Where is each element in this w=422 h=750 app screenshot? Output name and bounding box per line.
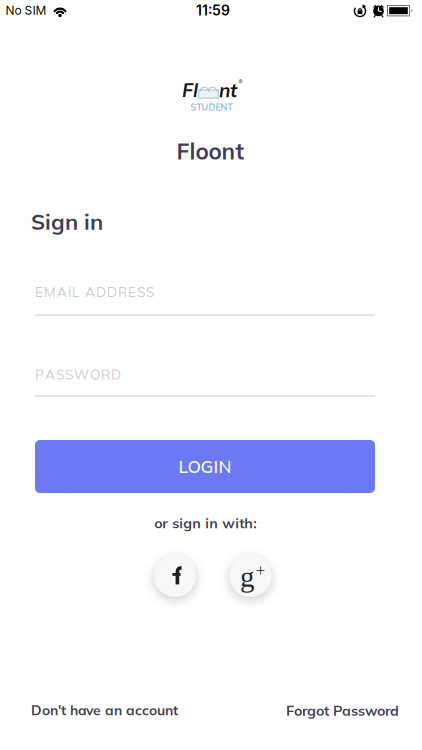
staticText: g: [240, 561, 255, 593]
button[interactable]: Forgot Password: [286, 702, 399, 719]
staticText: Forgot Password: [286, 702, 399, 719]
staticText: nt: [219, 78, 237, 102]
button[interactable]: LOGIN: [35, 440, 375, 493]
staticText: No SIM: [5, 3, 46, 18]
staticText: LOGIN: [178, 456, 231, 477]
staticText: 11:59: [196, 2, 230, 19]
staticText: Sign in: [31, 208, 103, 235]
staticText: STUDENT: [190, 101, 232, 113]
staticText: Don't have an account: [31, 701, 178, 719]
button[interactable]: Sign in with Facebook: [154, 555, 196, 597]
staticText: E M A I L A D D R E S S: [35, 283, 154, 300]
staticText: P A S S W O R D: [35, 366, 121, 383]
staticText: Fl: [182, 78, 198, 102]
staticText: or sign in with:: [154, 514, 257, 532]
staticText: Floont: [176, 137, 244, 165]
button[interactable]: Sign in with Google: [229, 555, 271, 597]
staticText: ®: [238, 78, 242, 86]
staticText: +: [256, 562, 265, 579]
button[interactable]: Don't have an account: [31, 701, 178, 719]
